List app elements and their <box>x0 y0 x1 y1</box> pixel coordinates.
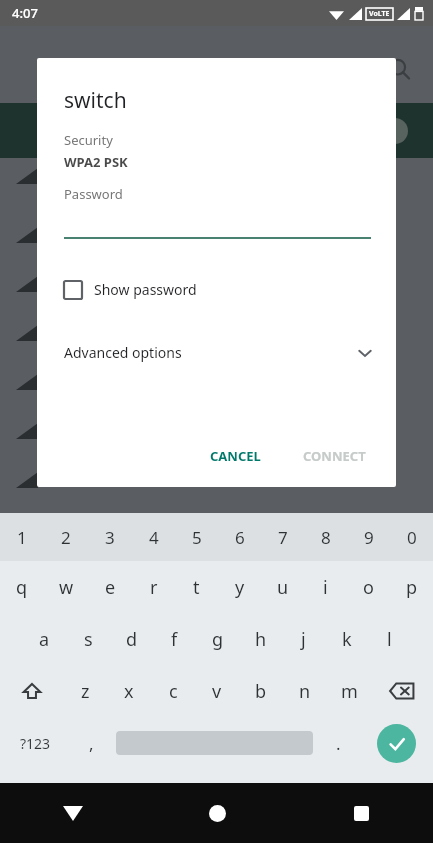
button[interactable]: ?123 <box>0 717 70 769</box>
button[interactable]: d <box>110 613 153 665</box>
button[interactable]: Enter <box>359 717 433 769</box>
button[interactable]: c <box>151 665 195 717</box>
button[interactable]: Backspace <box>371 665 433 717</box>
button[interactable]: 7 <box>261 513 304 561</box>
button[interactable]: z <box>63 665 107 717</box>
staticText: p <box>406 575 418 600</box>
button[interactable]: o <box>347 561 390 613</box>
button[interactable]: . <box>317 717 359 769</box>
staticText: u <box>277 575 289 600</box>
staticText: WPA2 PSK <box>64 153 128 171</box>
staticText: c <box>169 679 178 704</box>
button[interactable]: m <box>327 665 371 717</box>
staticText: h <box>255 627 267 652</box>
button[interactable]: Shift <box>0 665 63 717</box>
button[interactable]: w <box>44 561 88 613</box>
staticText: . <box>336 732 341 755</box>
button[interactable]: n <box>283 665 327 717</box>
staticText: g <box>212 627 224 652</box>
button[interactable]: 0 <box>390 513 433 561</box>
staticText: ?123 <box>20 734 51 753</box>
staticText: f <box>171 627 178 652</box>
staticText: l <box>387 627 392 652</box>
staticText: y <box>235 575 245 600</box>
staticText: w <box>59 575 74 600</box>
button[interactable]: 8 <box>304 513 347 561</box>
button[interactable]: i <box>304 561 347 613</box>
button[interactable]: CONNECT <box>291 439 378 473</box>
button[interactable]: b <box>239 665 283 717</box>
staticText: 7 <box>278 526 288 549</box>
staticText: Show password <box>94 280 197 299</box>
button[interactable]: Show password <box>64 280 197 299</box>
button[interactable]: Advanced options <box>64 343 374 362</box>
staticText: v <box>212 679 222 704</box>
button[interactable]: v <box>195 665 239 717</box>
staticText: s <box>84 627 93 652</box>
staticText: 0 <box>407 526 417 549</box>
staticText: b <box>255 679 267 704</box>
staticText: e <box>105 575 116 600</box>
staticText: VoLTE <box>369 9 390 19</box>
staticText: 6 <box>235 526 245 549</box>
button[interactable]: k <box>325 613 368 665</box>
staticText: 1 <box>17 526 27 549</box>
button[interactable]: u <box>261 561 304 613</box>
button[interactable]: 5 <box>175 513 218 561</box>
staticText: Password <box>64 185 123 203</box>
button[interactable]: a <box>22 613 66 665</box>
staticText: 4 <box>149 526 159 549</box>
button[interactable]: Home <box>145 783 289 843</box>
staticText: switch <box>64 86 127 115</box>
staticText: z <box>81 679 90 704</box>
button[interactable]: , <box>70 717 112 769</box>
button[interactable]: Recents <box>289 783 433 843</box>
staticText: k <box>342 627 352 652</box>
staticText: , <box>89 732 94 755</box>
button[interactable]: Back <box>0 783 145 843</box>
staticText: t <box>193 575 200 600</box>
staticText: 8 <box>321 526 331 549</box>
staticText: 5 <box>192 526 202 549</box>
staticText: 2 <box>61 526 71 549</box>
button[interactable]: q <box>0 561 44 613</box>
staticText: r <box>150 575 158 600</box>
staticText: 3 <box>105 526 115 549</box>
button[interactable]: s <box>66 613 110 665</box>
staticText: a <box>39 627 50 652</box>
staticText: q <box>16 575 28 600</box>
staticText: o <box>363 575 374 600</box>
staticText: 4:07 <box>12 4 38 22</box>
staticText: n <box>299 679 311 704</box>
button[interactable]: t <box>175 561 218 613</box>
staticText: CONNECT <box>303 447 366 465</box>
button[interactable]: r <box>132 561 175 613</box>
button[interactable]: CANCEL <box>198 439 273 473</box>
other: Expand advanced options <box>356 344 374 362</box>
button[interactable]: 2 <box>44 513 88 561</box>
button[interactable]: f <box>153 613 196 665</box>
button[interactable]: 6 <box>218 513 261 561</box>
button[interactable]: 1 <box>0 513 44 561</box>
button[interactable]: x <box>107 665 151 717</box>
staticText: 9 <box>364 526 374 549</box>
button[interactable]: y <box>218 561 261 613</box>
button[interactable]: p <box>390 561 433 613</box>
staticText: j <box>301 627 306 652</box>
staticText: x <box>124 679 134 704</box>
button[interactable]: g <box>196 613 239 665</box>
button[interactable]: e <box>88 561 132 613</box>
button[interactable]: l <box>368 613 411 665</box>
staticText: Advanced options <box>64 343 182 362</box>
button[interactable]: h <box>239 613 282 665</box>
button[interactable]: 4 <box>132 513 175 561</box>
staticText: Security <box>64 131 113 149</box>
staticText: i <box>323 575 328 600</box>
staticText: d <box>126 627 138 652</box>
button[interactable]: j <box>282 613 325 665</box>
staticText: CANCEL <box>210 447 261 465</box>
button[interactable]: 9 <box>347 513 390 561</box>
button[interactable]: 3 <box>88 513 132 561</box>
